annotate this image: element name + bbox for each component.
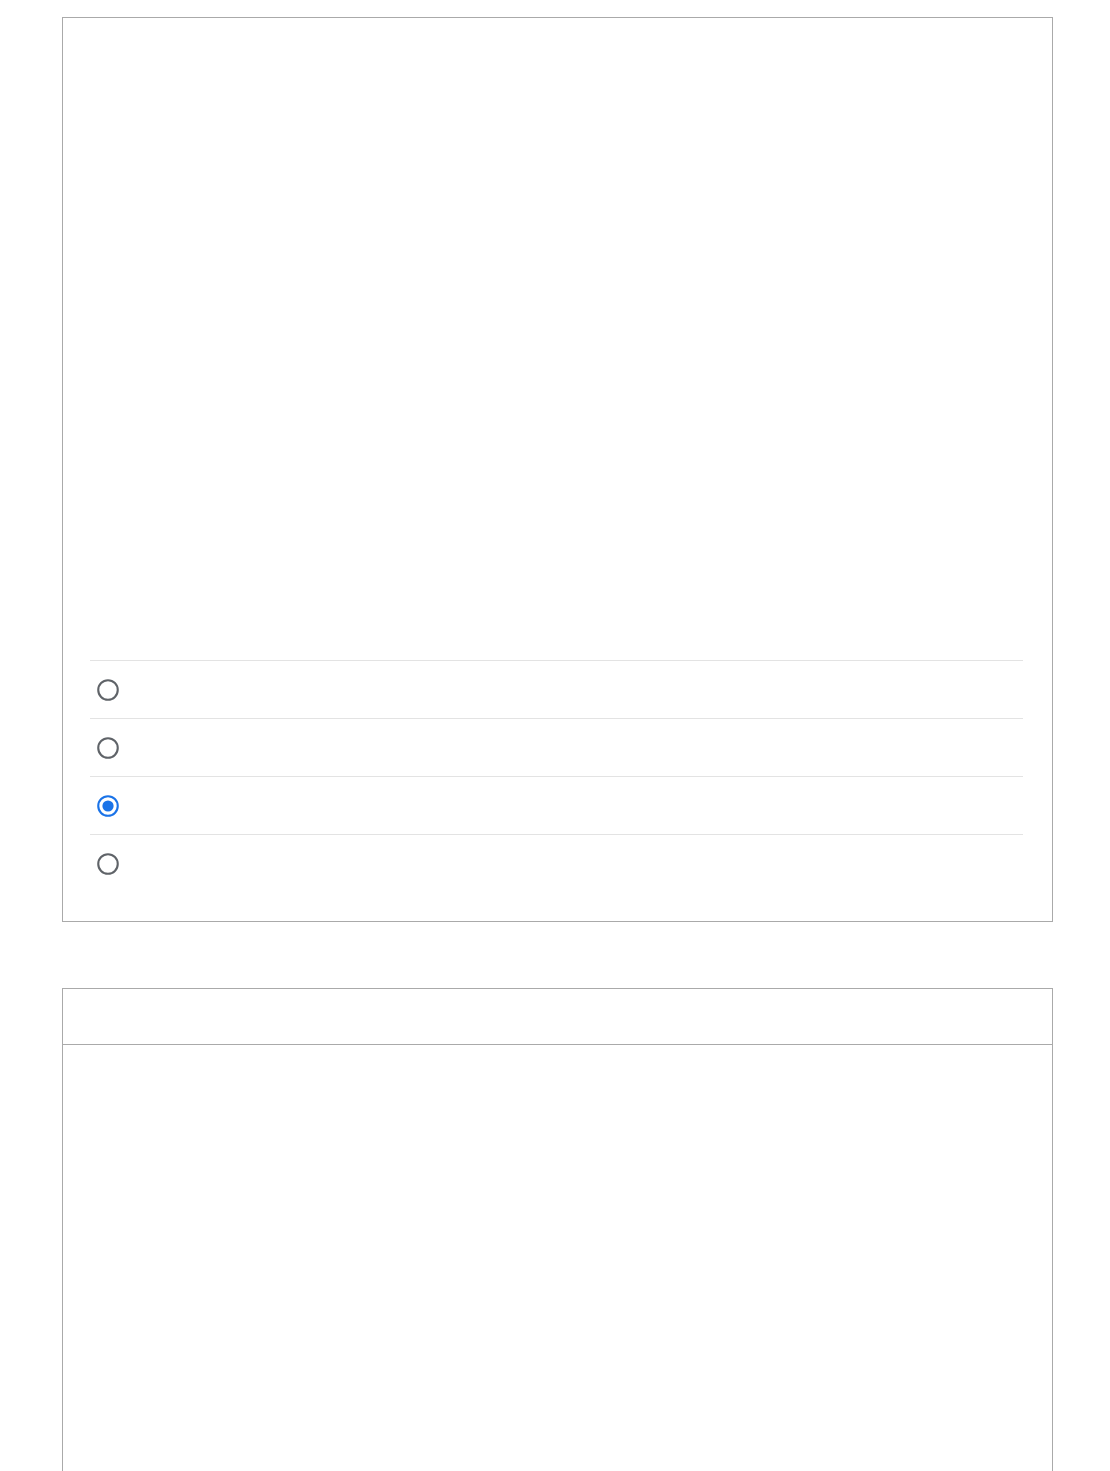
button[interactable]: Option 1 xyxy=(62,661,1053,718)
button[interactable]: Option 2 xyxy=(62,719,1053,776)
button[interactable]: Option 4 xyxy=(62,835,1053,892)
button[interactable] xyxy=(62,988,1053,1044)
button[interactable]: Option 3 xyxy=(62,777,1053,834)
